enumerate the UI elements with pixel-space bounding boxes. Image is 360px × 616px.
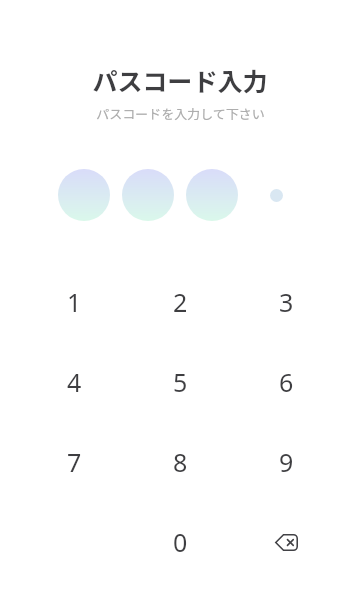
button[interactable]: 5: [127, 342, 233, 422]
staticText: パスコードを入力して下さい: [96, 104, 265, 123]
button[interactable]: 6: [233, 342, 339, 422]
staticText: 1: [67, 285, 82, 319]
button[interactable]: 7: [21, 422, 127, 502]
button[interactable]: Backspace: [233, 502, 339, 582]
staticText: 6: [279, 365, 294, 399]
staticText: 5: [173, 365, 188, 399]
staticText: 4: [67, 365, 82, 399]
staticText: 7: [67, 445, 82, 479]
button[interactable]: 1: [21, 262, 127, 342]
button[interactable]: 0: [127, 502, 233, 582]
button[interactable]: 3: [233, 262, 339, 342]
button[interactable]: 9: [233, 422, 339, 502]
button[interactable]: 4: [21, 342, 127, 422]
staticText: 8: [173, 445, 188, 479]
staticText: 9: [279, 445, 294, 479]
other: Backspace: [275, 534, 298, 551]
button[interactable]: 8: [127, 422, 233, 502]
staticText: 2: [173, 285, 188, 319]
staticText: パスコード入力: [92, 62, 268, 98]
staticText: 3: [279, 285, 294, 319]
button[interactable]: 2: [127, 262, 233, 342]
staticText: 0: [173, 525, 188, 559]
